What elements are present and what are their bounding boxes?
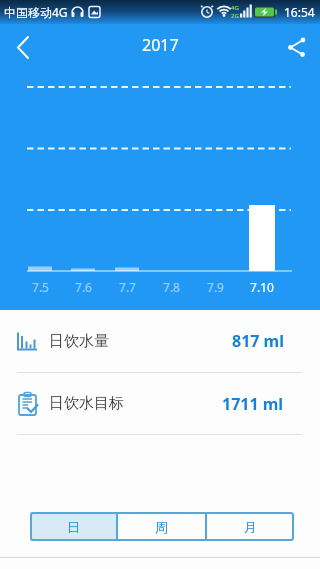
staticText: 7.9 [207, 279, 224, 295]
button[interactable]: 日饮水目标 [0, 373, 320, 434]
staticText: 2017 [142, 34, 179, 56]
staticText: 1711 ml [222, 393, 284, 415]
staticText: 日饮水目标 [49, 394, 124, 413]
staticText: 7.10 [250, 279, 274, 295]
button[interactable]: 日 [30, 512, 116, 541]
staticText: 4G [231, 4, 239, 12]
staticText: 月 [244, 519, 257, 535]
button[interactable]: 日饮水量 [0, 310, 320, 372]
staticText: 7.6 [75, 279, 92, 295]
staticText: 817 ml [232, 330, 284, 352]
button[interactable]: 月 [207, 512, 294, 541]
staticText: 7.8 [163, 279, 180, 295]
staticText: 16:54 [284, 4, 315, 20]
button[interactable]: 周 [118, 512, 205, 541]
staticText: 日饮水量 [49, 332, 109, 351]
staticText: 周 [155, 519, 168, 535]
staticText: 7.7 [119, 279, 136, 295]
staticText: 日 [67, 519, 80, 535]
staticText: 2G [231, 12, 239, 20]
button[interactable] [279, 24, 320, 65]
staticText: 中国移动4G [4, 4, 68, 20]
button[interactable] [0, 24, 41, 65]
staticText: 7.5 [32, 279, 49, 295]
